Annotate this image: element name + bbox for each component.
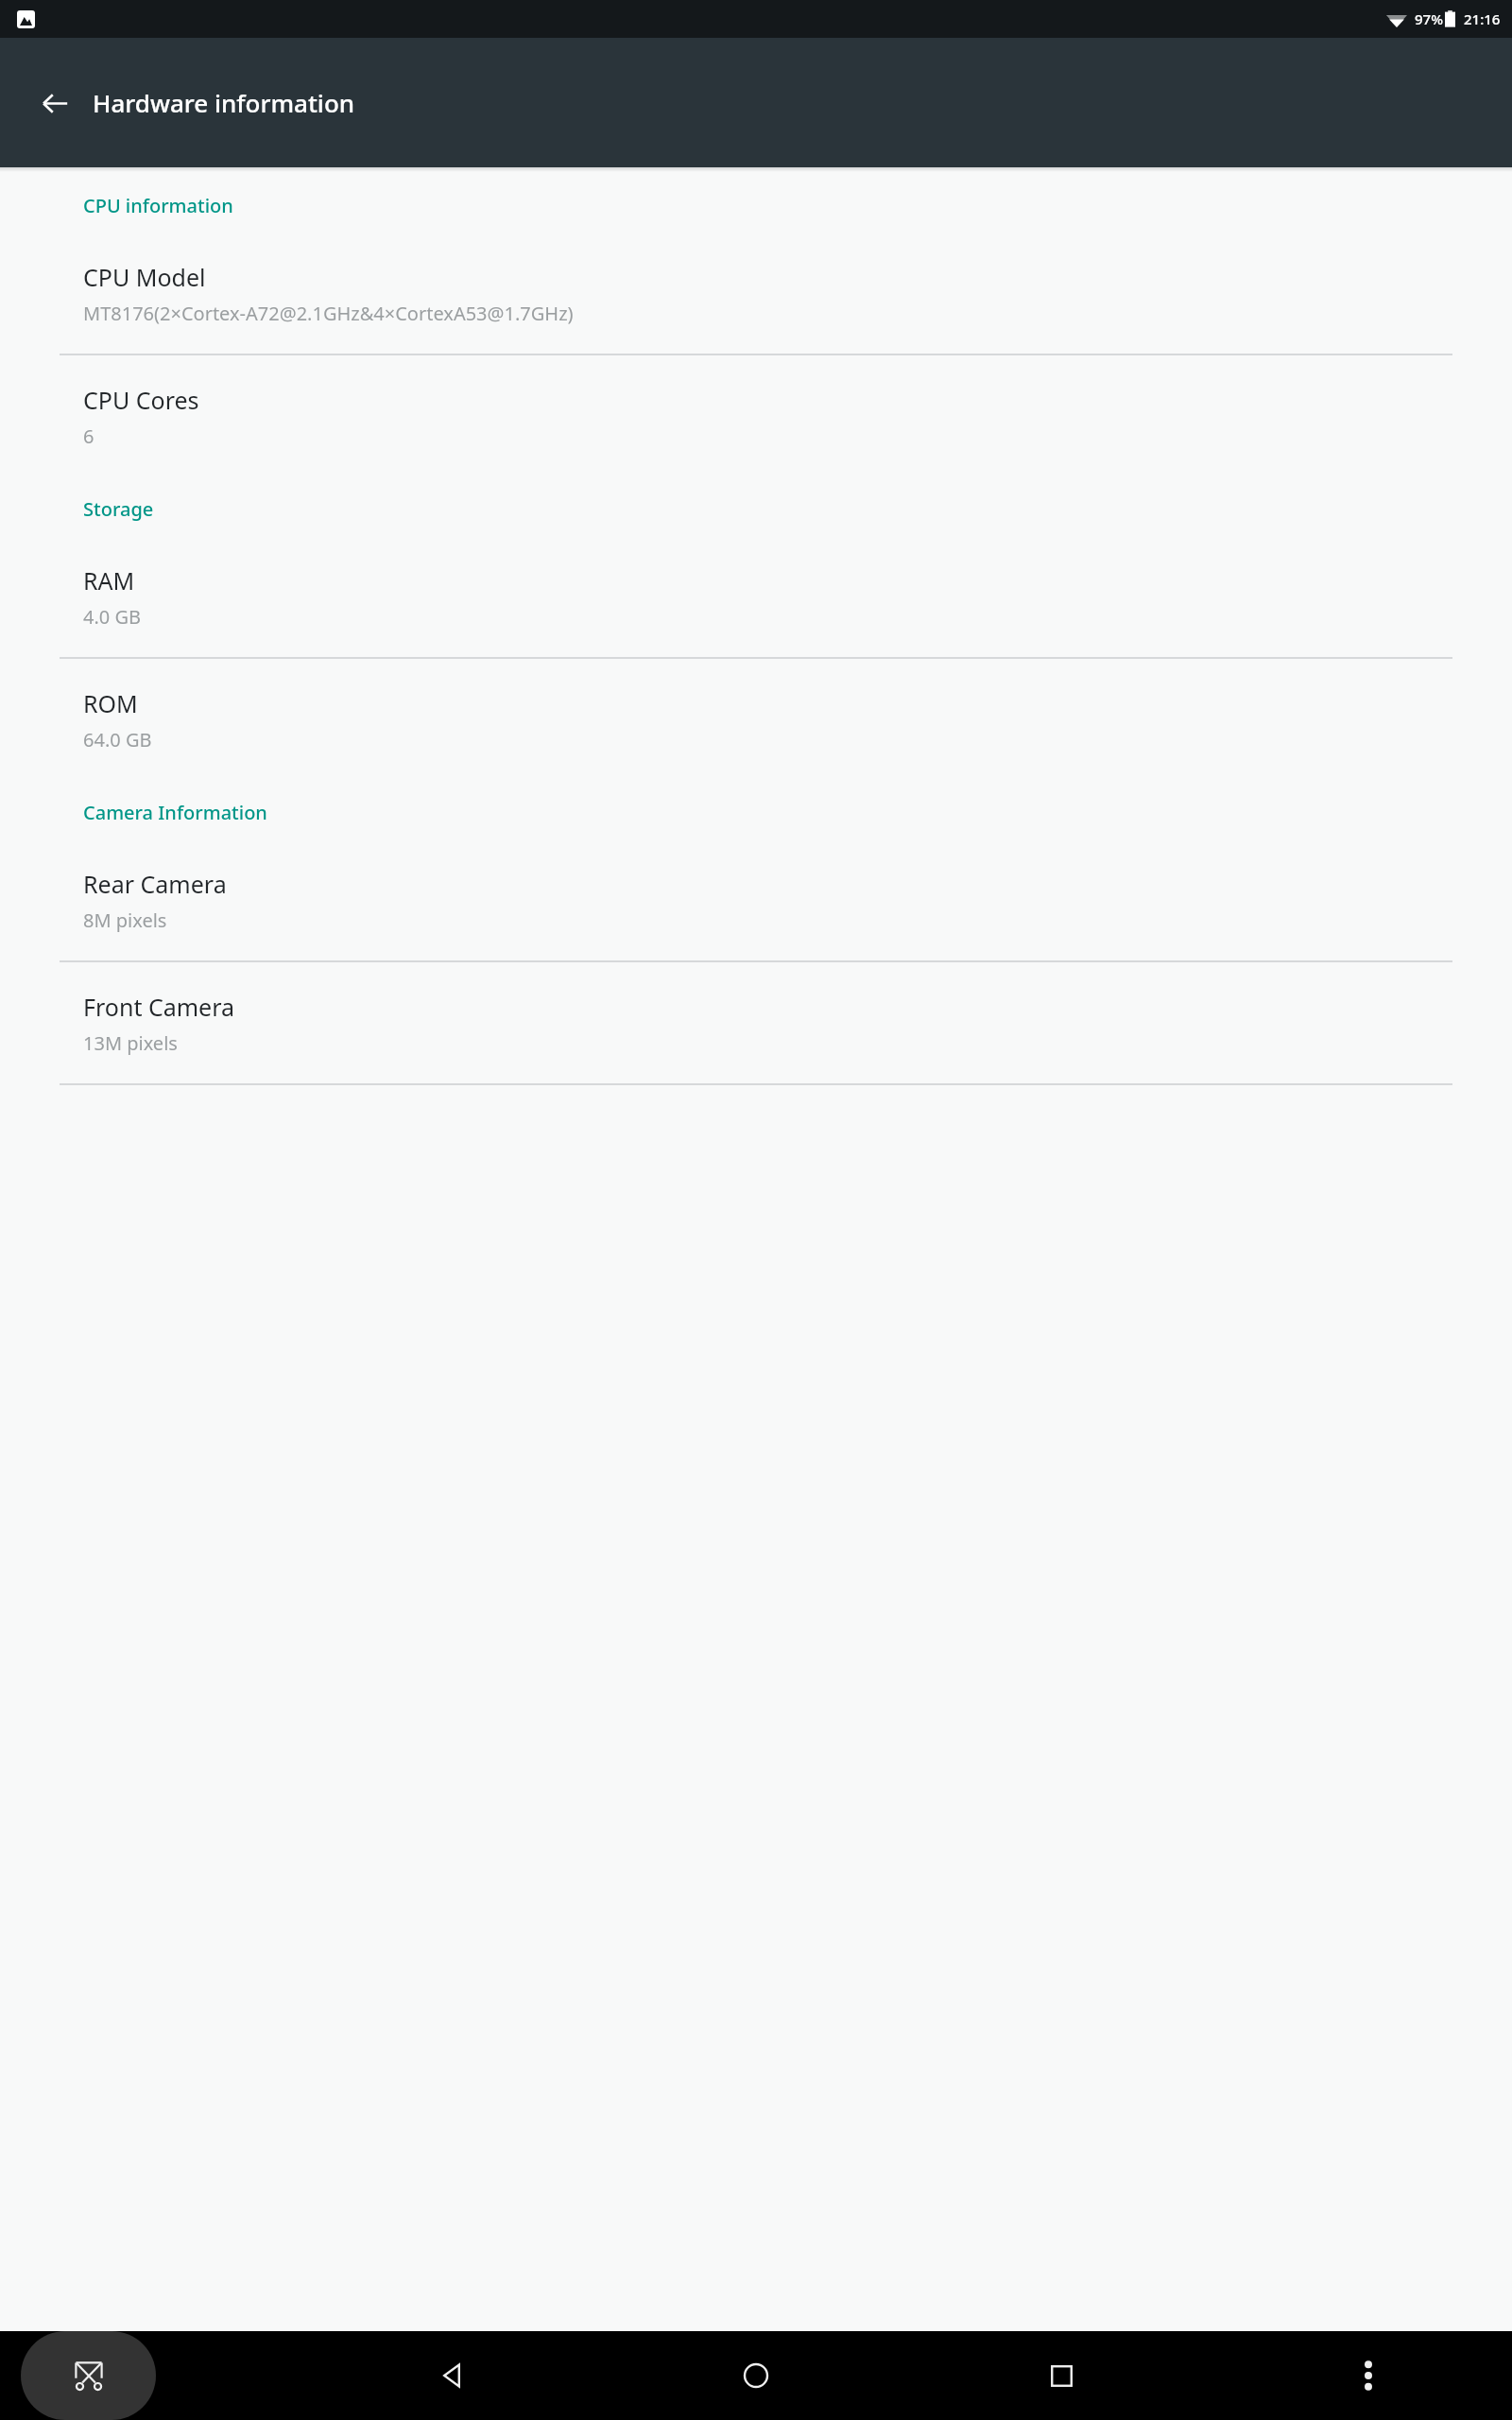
staticText: Camera Information <box>83 800 267 825</box>
staticText: Front Camera <box>83 991 235 1023</box>
button[interactable]: Home <box>711 2331 801 2420</box>
button[interactable]: More options <box>1323 2331 1414 2420</box>
staticText: 13M pixels <box>83 1030 178 1056</box>
staticText: Rear Camera <box>83 868 227 900</box>
button[interactable]: Back <box>406 2331 497 2420</box>
staticText: 6 <box>83 423 94 449</box>
staticText: RAM <box>83 564 135 596</box>
staticText: Hardware information <box>93 86 355 119</box>
staticText: CPU information <box>83 193 233 218</box>
staticText: Storage <box>83 496 154 522</box>
button[interactable]: ROM <box>0 659 1512 752</box>
staticText: 97% <box>1415 9 1443 28</box>
button[interactable]: Back <box>28 77 81 130</box>
button[interactable]: CPU Model <box>0 218 1512 326</box>
staticText: 64.0 GB <box>83 727 152 752</box>
button[interactable]: RAM <box>0 522 1512 630</box>
staticText: CPU Model <box>83 261 206 293</box>
staticText: 8M pixels <box>83 907 167 933</box>
button[interactable]: CPU Cores <box>0 355 1512 449</box>
staticText: 4.0 GB <box>83 604 141 630</box>
staticText: ROM <box>83 687 138 719</box>
staticText: 21:16 <box>1464 9 1501 28</box>
button[interactable]: Front Camera <box>0 962 1512 1056</box>
button[interactable]: Rear Camera <box>0 825 1512 933</box>
button[interactable]: Screenshot <box>21 2331 156 2420</box>
staticText: CPU Cores <box>83 384 199 416</box>
staticText: MT8176(2×Cortex-A72@2.1GHz&4×CortexA53@1… <box>83 301 574 326</box>
button[interactable]: Recent apps <box>1016 2331 1107 2420</box>
